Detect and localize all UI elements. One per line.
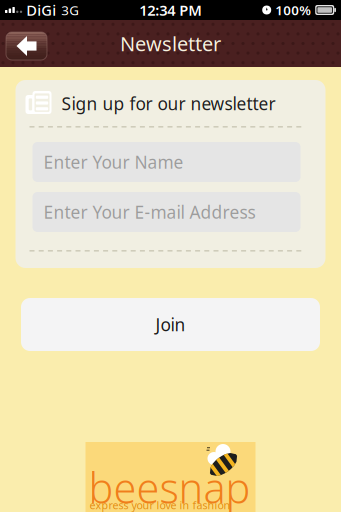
staticText: 100%: [275, 1, 311, 19]
staticText: Enter Your Name: [43, 150, 183, 173]
staticText: express your love in fashion: [89, 498, 230, 512]
staticText: Join: [155, 313, 185, 336]
staticText: 12:34 PM: [139, 0, 202, 20]
button[interactable]: Back: [6, 32, 47, 60]
button[interactable]: Join: [21, 298, 320, 351]
staticText: Sign up for our newsletter: [61, 92, 275, 115]
staticText: DiGi: [26, 0, 56, 20]
staticText: 3G: [61, 1, 79, 19]
staticText: Enter Your E-mail Address: [43, 200, 255, 223]
staticText: Newsletter: [120, 30, 221, 57]
staticText: beesnap: [88, 460, 250, 512]
